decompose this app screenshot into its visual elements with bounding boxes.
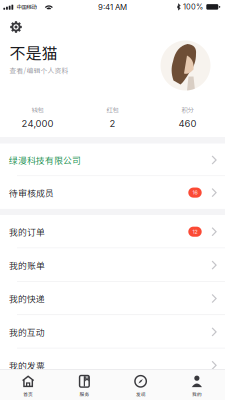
staticText: 红包 xyxy=(106,105,118,114)
button[interactable]: 我的 xyxy=(169,369,225,400)
staticText: 我的快递 xyxy=(9,292,45,305)
staticText: 9:41 AM xyxy=(98,2,127,12)
staticText: 24,000 xyxy=(21,118,53,129)
staticText: 发现 xyxy=(136,391,146,397)
staticText: 100% xyxy=(183,2,203,11)
staticText: 不是猫 xyxy=(10,41,58,64)
button[interactable]: 服务 xyxy=(56,369,112,400)
staticText: 绿漫科技有限公司 xyxy=(9,154,81,166)
staticText: 待审核成员 xyxy=(9,186,54,199)
staticText: 首页 xyxy=(23,391,33,397)
staticText: 服务 xyxy=(79,391,89,397)
button[interactable]: 我的互动 xyxy=(0,315,225,349)
button[interactable]: Settings xyxy=(5,18,27,36)
button[interactable]: 积分 xyxy=(150,95,225,137)
staticText: 16 xyxy=(192,189,197,196)
staticText: 12 xyxy=(192,228,197,235)
button[interactable]: 我的发票 xyxy=(0,349,225,382)
staticText: 我的互动 xyxy=(9,325,45,338)
button[interactable]: 红包 xyxy=(75,95,150,137)
button[interactable]: 待审核成员 xyxy=(0,176,225,209)
button[interactable]: 发现 xyxy=(112,369,169,400)
staticText: 我的 xyxy=(192,391,202,397)
staticText: 2 xyxy=(109,118,115,129)
staticText: 中国移动 xyxy=(17,3,37,11)
staticText: 我的订单 xyxy=(9,225,45,238)
button[interactable]: 我的账单 xyxy=(0,248,225,282)
button[interactable]: 钱包 xyxy=(0,95,75,137)
button[interactable]: 我的订单 xyxy=(0,215,225,248)
staticText: 查看/编辑个人资料 xyxy=(10,65,69,75)
button[interactable]: 绿漫科技有限公司 xyxy=(0,144,225,176)
button[interactable]: 首页 xyxy=(0,369,56,400)
staticText: 我的发票 xyxy=(9,359,45,372)
staticText: 钱包 xyxy=(31,105,43,114)
button[interactable]: 不是猫 xyxy=(0,36,225,95)
button[interactable]: 我的快递 xyxy=(0,282,225,315)
staticText: 我的账单 xyxy=(9,259,45,271)
staticText: 460 xyxy=(178,118,196,129)
staticText: 积分 xyxy=(181,105,193,114)
